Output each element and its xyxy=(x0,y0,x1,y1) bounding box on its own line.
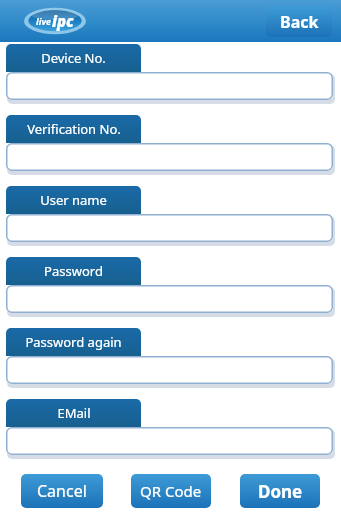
button[interactable]: User name xyxy=(6,186,141,214)
button[interactable]: Device No. xyxy=(6,44,141,72)
button[interactable] xyxy=(6,285,335,316)
staticText: Password again xyxy=(25,333,122,351)
staticText: Password xyxy=(44,262,103,280)
button[interactable]: Back xyxy=(266,6,332,37)
staticText: User name xyxy=(40,191,107,209)
staticText: QR Code xyxy=(140,481,202,501)
staticText: Cancel xyxy=(37,480,87,502)
button[interactable] xyxy=(6,356,335,387)
staticText: Back xyxy=(280,11,319,33)
button[interactable] xyxy=(6,143,335,174)
staticText: EMail xyxy=(57,404,91,422)
button[interactable] xyxy=(6,427,335,458)
button[interactable] xyxy=(6,72,335,103)
button[interactable]: QR Code xyxy=(131,474,211,508)
button[interactable]: EMail xyxy=(6,399,141,427)
staticText: Device No. xyxy=(41,49,106,67)
button[interactable]: Cancel xyxy=(21,474,103,508)
staticText: live xyxy=(36,15,52,27)
staticText: Verification No. xyxy=(27,120,121,138)
button[interactable] xyxy=(6,214,335,245)
button[interactable]: Password xyxy=(6,257,141,285)
staticText: ipc xyxy=(52,11,74,31)
button[interactable]: Done xyxy=(240,474,320,508)
staticText: Done xyxy=(258,480,303,503)
button[interactable]: Password again xyxy=(6,328,141,356)
button[interactable]: Verification No. xyxy=(6,115,141,143)
